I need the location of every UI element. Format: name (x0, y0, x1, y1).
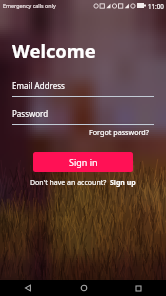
button[interactable]: Sign in (33, 152, 133, 172)
staticText: Welcome (12, 38, 96, 63)
staticText: Forgot password? (89, 127, 149, 137)
button[interactable]: Sign up (110, 178, 136, 188)
staticText: Sign in (69, 156, 98, 168)
button[interactable]: Forgot password? (89, 127, 149, 137)
button[interactable]: Email Address (12, 80, 154, 97)
staticText: Emergency calls only (3, 2, 56, 9)
button[interactable]: Home (56, 280, 111, 296)
staticText: Password (12, 108, 49, 119)
staticText: 11:00 (148, 2, 164, 10)
button[interactable]: Back (0, 280, 56, 296)
button[interactable]: Password (12, 108, 154, 125)
staticText: Email Address (12, 80, 65, 91)
button[interactable]: Recent apps (111, 280, 166, 296)
staticText: Don't have an account? (30, 178, 107, 188)
